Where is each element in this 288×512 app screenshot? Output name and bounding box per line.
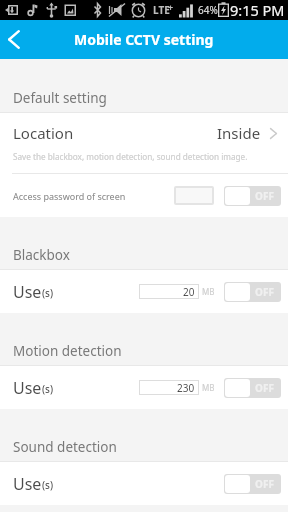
staticText: Save the blackbox, motion detection, sou…	[13, 151, 248, 162]
button[interactable]: Location	[0, 113, 288, 174]
staticText: Access password of screen	[13, 190, 126, 202]
button[interactable]: Access password of screen	[0, 174, 288, 217]
staticText: Location	[13, 123, 74, 143]
staticText: Motion detection	[13, 342, 122, 360]
staticText: (s)	[42, 286, 54, 300]
staticText: Sound detection	[13, 438, 117, 456]
staticText: Mobile CCTV setting	[74, 30, 214, 49]
staticText: (s)	[42, 478, 54, 492]
staticText: Default setting	[13, 89, 107, 107]
staticText: LTE	[153, 3, 170, 17]
staticText: Use	[13, 281, 42, 303]
staticText: 9:15 PM	[230, 0, 285, 20]
staticText: Use	[13, 473, 42, 495]
staticText: 64%	[198, 3, 218, 17]
staticText: 20	[183, 285, 195, 299]
staticText: OFF	[255, 477, 274, 491]
staticText: Use	[13, 377, 42, 399]
button[interactable]: Toggle off	[224, 378, 281, 398]
staticText: Blackbox	[13, 246, 70, 264]
staticText: OFF	[255, 189, 274, 203]
staticText: 230	[177, 381, 195, 395]
staticText: MB	[202, 382, 215, 393]
button[interactable]: Back	[0, 20, 28, 59]
staticText: OFF	[255, 381, 274, 395]
staticText: MB	[202, 286, 215, 297]
staticText: +	[168, 1, 174, 13]
button[interactable]: Toggle off	[224, 282, 281, 302]
button[interactable]: Toggle off	[224, 474, 281, 494]
staticText: Inside	[217, 123, 261, 143]
staticText: (s)	[42, 382, 54, 396]
button[interactable]: Toggle off	[224, 186, 281, 206]
staticText: OFF	[255, 285, 274, 299]
